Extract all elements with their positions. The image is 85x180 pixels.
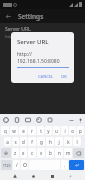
staticText: c <box>31 150 34 156</box>
staticText: m <box>66 150 71 156</box>
button[interactable]: n <box>55 148 63 158</box>
staticText: d <box>22 139 25 145</box>
button[interactable]: a <box>4 137 11 146</box>
staticText: r <box>31 128 33 134</box>
button[interactable]: Hide keyboard <box>66 172 74 180</box>
button[interactable]: c <box>28 148 36 158</box>
button[interactable]: p <box>77 126 84 135</box>
staticText: w <box>12 128 16 134</box>
button[interactable]: Settings <box>46 116 53 123</box>
button[interactable]: j <box>55 137 63 146</box>
staticText: z <box>14 150 17 156</box>
staticText: http://192.168.1.50:8080 <box>17 51 69 65</box>
button[interactable]: q <box>1 126 9 135</box>
staticText: k <box>67 139 70 145</box>
button[interactable]: Clipboard <box>13 116 20 123</box>
button[interactable]: i <box>61 126 68 135</box>
staticText: q <box>4 128 7 134</box>
button[interactable]: Voice input <box>77 117 83 123</box>
button[interactable]: f <box>28 137 36 146</box>
staticText: x <box>22 150 25 156</box>
button[interactable]: More <box>68 117 74 123</box>
staticText: / <box>16 162 18 168</box>
staticText: g <box>40 139 43 145</box>
staticText: e <box>22 128 25 134</box>
button[interactable]: Enter <box>69 160 84 170</box>
button[interactable]: y <box>45 126 52 135</box>
button[interactable]: ?123 <box>1 160 12 170</box>
staticText: u <box>55 128 58 134</box>
button[interactable]: d <box>20 137 27 146</box>
staticText: j <box>58 139 60 145</box>
staticText: . <box>64 162 66 168</box>
staticText: Settings <box>18 12 44 21</box>
button[interactable]: Emoji <box>21 160 28 170</box>
button[interactable]: o <box>69 126 76 135</box>
button[interactable]: OK <box>59 73 69 80</box>
staticText: s <box>14 139 17 145</box>
button[interactable]: CANCEL <box>36 73 56 80</box>
button[interactable]: t <box>37 126 44 135</box>
button[interactable]: Shift <box>1 148 11 158</box>
button[interactable]: Server URL <box>0 23 85 42</box>
button[interactable]: s <box>12 137 19 146</box>
button[interactable]: Google <box>2 116 9 123</box>
staticText: l <box>76 139 78 145</box>
staticText: http://192.168.1.50:8080 <box>5 34 51 39</box>
button[interactable]: . <box>61 160 68 170</box>
staticText: ?123 <box>3 163 11 168</box>
button[interactable]: Home <box>29 172 37 180</box>
button[interactable]: r <box>28 126 36 135</box>
button[interactable]: Backspace <box>73 148 84 158</box>
button[interactable]: l <box>73 137 81 146</box>
button[interactable]: e <box>19 126 27 135</box>
button[interactable]: m <box>64 148 72 158</box>
staticText: y <box>47 128 50 134</box>
staticText: Server URL <box>5 26 31 33</box>
button[interactable]: h <box>46 137 54 146</box>
staticText: f <box>31 139 33 145</box>
button[interactable]: x <box>20 148 27 158</box>
staticText: a <box>6 139 9 145</box>
button[interactable]: k <box>64 137 72 146</box>
button[interactable]: b <box>46 148 54 158</box>
button[interactable]: GIF <box>24 116 31 123</box>
staticText: v <box>40 150 43 156</box>
button[interactable]: / <box>13 160 20 170</box>
button[interactable]: w <box>10 126 18 135</box>
button[interactable]: Recents <box>48 172 56 180</box>
staticText: h <box>49 139 52 145</box>
staticText: CANCEL <box>38 74 54 79</box>
staticText: Server URL <box>17 38 49 46</box>
button[interactable]: Back <box>3 11 13 21</box>
button[interactable]: v <box>37 148 45 158</box>
staticText: p <box>79 128 82 134</box>
button[interactable]: Stickers <box>35 116 42 123</box>
staticText: i <box>64 128 66 134</box>
button[interactable]: Back <box>11 172 19 180</box>
staticText: n <box>58 150 61 156</box>
staticText: t <box>40 128 42 134</box>
button[interactable]: g <box>37 137 45 146</box>
staticText: b <box>49 150 52 156</box>
button[interactable]: u <box>53 126 60 135</box>
staticText: o <box>71 128 74 134</box>
staticText: OK <box>61 74 67 79</box>
button[interactable]: z <box>12 148 19 158</box>
